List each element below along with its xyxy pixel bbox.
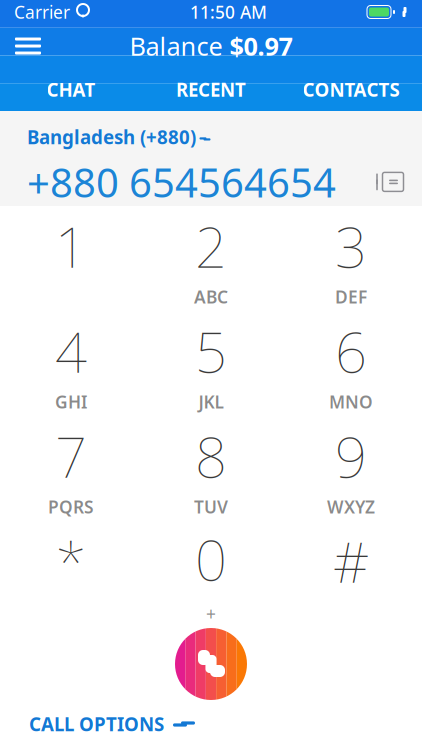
button[interactable]: Delete bbox=[360, 160, 414, 204]
staticText: 5 bbox=[195, 314, 227, 388]
button[interactable]: CALL OPTIONS bbox=[10, 702, 214, 746]
staticText: 1 bbox=[55, 209, 87, 283]
button[interactable]: 2 bbox=[141, 206, 281, 311]
staticText: + bbox=[206, 602, 216, 625]
staticText: DEF bbox=[335, 285, 367, 308]
staticText: GHI bbox=[55, 390, 87, 413]
staticText: Bangladesh (+880) bbox=[27, 124, 196, 149]
button[interactable]: 9 bbox=[281, 416, 421, 521]
staticText: # bbox=[333, 524, 369, 598]
staticText: TUV bbox=[194, 495, 228, 518]
button[interactable]: Menu bbox=[0, 24, 56, 68]
staticText: 3 bbox=[335, 209, 367, 283]
staticText: 11:50 AM bbox=[190, 0, 267, 23]
staticText: 4 bbox=[55, 314, 87, 388]
staticText: WXYZ bbox=[327, 495, 375, 518]
button[interactable]: CHAT bbox=[1, 68, 141, 111]
staticText: Balance bbox=[129, 29, 222, 63]
staticText: JKL bbox=[198, 390, 223, 413]
staticText: PQRS bbox=[48, 495, 94, 518]
button[interactable]: 0 bbox=[141, 521, 281, 626]
staticText: CHAT bbox=[46, 77, 95, 102]
button[interactable]: 3 bbox=[281, 206, 421, 311]
button[interactable]: Bangladesh (+880) bbox=[27, 124, 212, 149]
staticText: +880 654564654 bbox=[27, 155, 336, 208]
staticText: 6 bbox=[335, 314, 367, 388]
staticText: 2 bbox=[195, 209, 227, 283]
button[interactable]: * bbox=[1, 521, 141, 626]
staticText: Carrier bbox=[14, 0, 70, 23]
staticText: MNO bbox=[329, 390, 373, 413]
button[interactable]: RECENT bbox=[141, 68, 281, 111]
button[interactable]: Call bbox=[175, 628, 247, 700]
staticText: * bbox=[55, 524, 86, 598]
staticText: CONTACTS bbox=[302, 77, 399, 102]
button[interactable]: 8 bbox=[141, 416, 281, 521]
button[interactable]: 1 bbox=[1, 206, 141, 311]
staticText: RECENT bbox=[176, 77, 246, 102]
staticText: ABC bbox=[194, 285, 228, 308]
staticText: 9 bbox=[335, 419, 367, 493]
staticText: 0 bbox=[195, 522, 227, 596]
staticText: CALL OPTIONS bbox=[29, 712, 164, 736]
button[interactable]: 5 bbox=[141, 311, 281, 416]
staticText: $0.97 bbox=[229, 29, 292, 63]
button[interactable]: 7 bbox=[1, 416, 141, 521]
staticText: 7 bbox=[55, 419, 87, 493]
button[interactable]: 6 bbox=[281, 311, 421, 416]
button[interactable]: 4 bbox=[1, 311, 141, 416]
staticText: 8 bbox=[195, 419, 227, 493]
button[interactable]: CONTACTS bbox=[281, 68, 421, 111]
button[interactable]: # bbox=[281, 521, 421, 626]
